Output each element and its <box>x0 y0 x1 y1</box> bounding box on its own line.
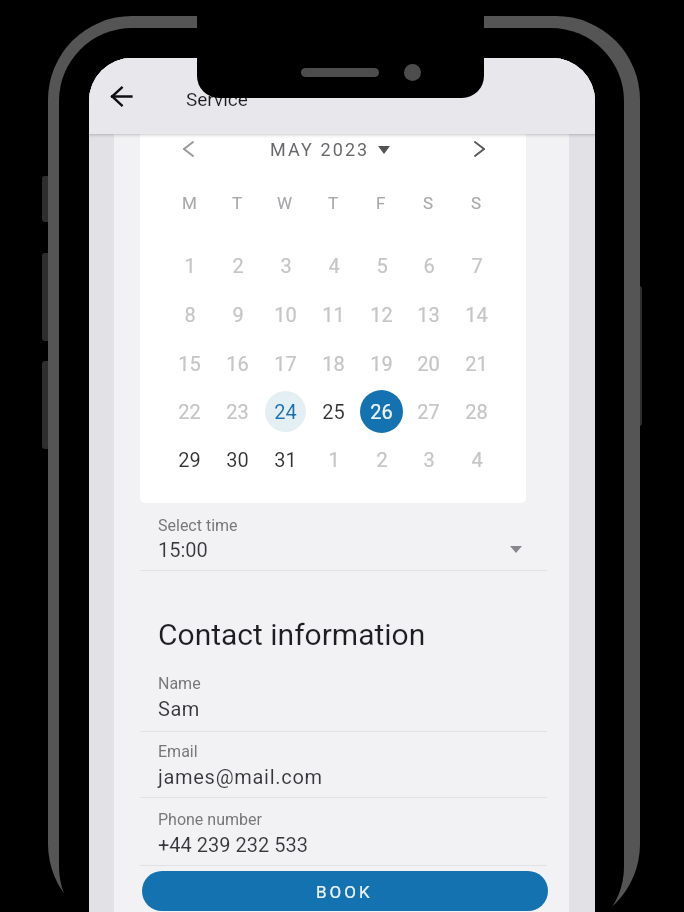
staticText: 5 <box>376 254 388 277</box>
button[interactable]: 11 <box>313 294 354 335</box>
button[interactable]: 3 <box>408 439 449 480</box>
button[interactable]: 29 <box>169 439 210 480</box>
staticText: 11 <box>322 303 345 326</box>
staticText: Sam <box>158 697 200 720</box>
button[interactable]: 19 <box>361 343 402 384</box>
button[interactable]: 15 <box>169 343 210 384</box>
button[interactable]: 28 <box>456 391 497 432</box>
button[interactable]: 17 <box>265 343 306 384</box>
button[interactable]: 2 <box>361 439 402 480</box>
button[interactable]: 24 <box>265 391 306 432</box>
staticText: 12 <box>370 303 393 326</box>
staticText: 17 <box>274 352 297 375</box>
button[interactable]: 16 <box>217 343 258 384</box>
staticText: MAY 2023 <box>270 139 370 160</box>
button[interactable]: 7 <box>456 245 497 286</box>
staticText: Email <box>158 742 198 761</box>
button[interactable]: 8 <box>169 294 210 335</box>
staticText: W <box>277 193 293 213</box>
staticText: 1 <box>328 448 340 471</box>
button[interactable]: 14 <box>456 294 497 335</box>
staticText: 3 <box>280 254 292 277</box>
button[interactable]: 4 <box>313 245 354 286</box>
staticText: 26 <box>370 400 393 423</box>
button[interactable]: 12 <box>361 294 402 335</box>
staticText: 4 <box>328 254 340 277</box>
staticText: 29 <box>178 448 201 471</box>
staticText: 1 <box>184 254 196 277</box>
button[interactable] <box>140 800 547 860</box>
staticText: Name <box>158 674 201 693</box>
button[interactable]: 2 <box>217 245 258 286</box>
staticText: 6 <box>423 254 435 277</box>
button[interactable]: 23 <box>217 391 258 432</box>
button[interactable]: 30 <box>217 439 258 480</box>
button[interactable]: 21 <box>456 343 497 384</box>
staticText: 30 <box>226 448 249 471</box>
staticText: 3 <box>423 448 435 471</box>
button[interactable]: 3 <box>265 245 306 286</box>
button[interactable] <box>140 664 547 724</box>
button[interactable]: 9 <box>217 294 258 335</box>
button[interactable]: BOOK <box>142 871 548 911</box>
button[interactable]: 1 <box>313 439 354 480</box>
button[interactable]: 4 <box>456 439 497 480</box>
staticText: 31 <box>274 448 297 471</box>
staticText: 8 <box>184 303 196 326</box>
staticText: 20 <box>417 352 440 375</box>
staticText: 2 <box>376 448 388 471</box>
staticText: F <box>376 193 386 213</box>
staticText: 23 <box>226 400 249 423</box>
staticText: T <box>328 193 339 213</box>
staticText: T <box>232 193 243 213</box>
staticText: 4 <box>471 448 483 471</box>
button[interactable] <box>140 508 547 570</box>
staticText: M <box>182 193 197 213</box>
button[interactable]: Back <box>97 72 145 120</box>
button[interactable]: 20 <box>408 343 449 384</box>
button[interactable] <box>140 732 547 792</box>
staticText: Service <box>186 88 248 110</box>
staticText: BOOK <box>316 882 373 902</box>
button[interactable]: 10 <box>265 294 306 335</box>
button[interactable]: 13 <box>408 294 449 335</box>
button[interactable]: 18 <box>313 343 354 384</box>
staticText: Phone number <box>158 810 262 829</box>
staticText: 13 <box>417 303 440 326</box>
button[interactable]: Next month <box>459 134 499 169</box>
button[interactable]: Select time <box>497 530 535 568</box>
button[interactable]: 22 <box>169 391 210 432</box>
staticText: S <box>423 193 434 213</box>
staticText: Select time <box>158 516 238 535</box>
button[interactable]: 25 <box>313 391 354 432</box>
staticText: 7 <box>471 254 483 277</box>
button[interactable]: Previous month <box>168 134 208 169</box>
staticText: 27 <box>417 400 440 423</box>
staticText: 18 <box>322 352 345 375</box>
staticText: 25 <box>322 400 345 423</box>
button[interactable]: MAY 2023 <box>270 139 390 160</box>
staticText: +44 239 232 533 <box>158 833 308 856</box>
button[interactable]: 27 <box>408 391 449 432</box>
staticText: 19 <box>370 352 393 375</box>
staticText: 15:00 <box>158 538 208 561</box>
staticText: 15 <box>178 352 201 375</box>
staticText: 24 <box>274 400 297 423</box>
staticText: S <box>471 193 482 213</box>
button[interactable]: 6 <box>408 245 449 286</box>
button[interactable]: 31 <box>265 439 306 480</box>
staticText: 14 <box>465 303 488 326</box>
staticText: 16 <box>226 352 249 375</box>
staticText: 22 <box>178 400 201 423</box>
button[interactable]: 1 <box>169 245 210 286</box>
staticText: 28 <box>465 400 488 423</box>
button[interactable]: 5 <box>361 245 402 286</box>
staticText: 9 <box>232 303 244 326</box>
button[interactable]: 26 <box>360 390 403 433</box>
staticText: Contact information <box>158 617 426 652</box>
staticText: 2 <box>232 254 244 277</box>
staticText: 10 <box>274 303 297 326</box>
staticText: james@mail.com <box>158 765 323 788</box>
staticText: 21 <box>465 352 488 375</box>
